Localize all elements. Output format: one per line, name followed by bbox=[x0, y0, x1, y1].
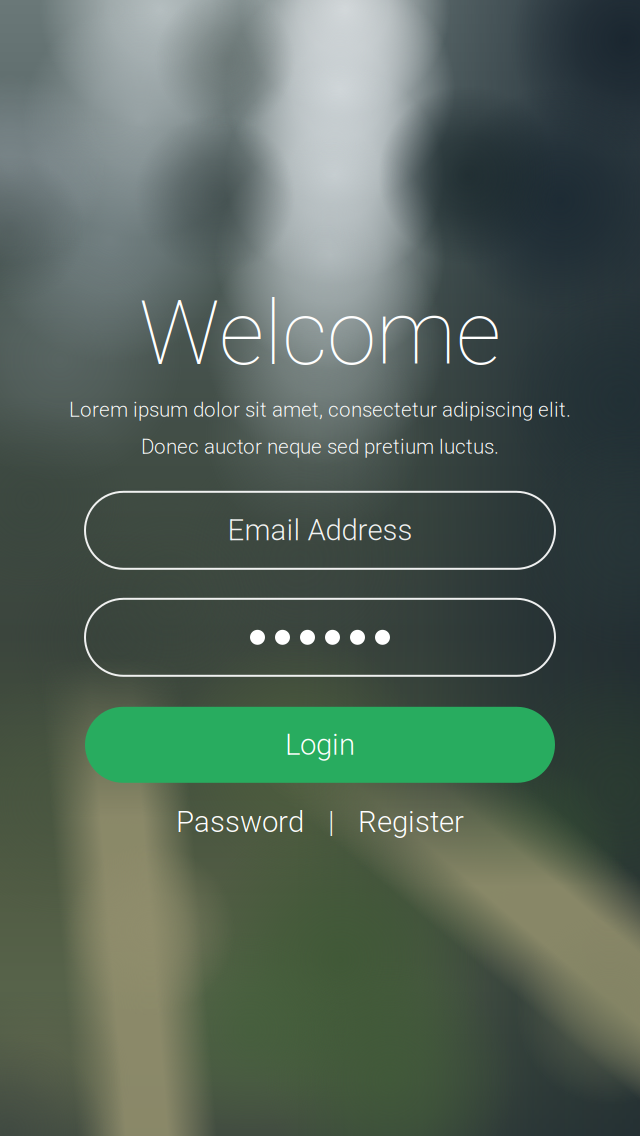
button[interactable]: Register bbox=[350, 797, 472, 847]
staticText: Login bbox=[285, 728, 355, 762]
button[interactable]: Login bbox=[85, 707, 555, 783]
staticText: Register bbox=[358, 805, 464, 839]
button[interactable] bbox=[85, 599, 555, 676]
staticText: Password bbox=[176, 805, 304, 839]
button[interactable]: Email Address bbox=[85, 492, 555, 569]
button[interactable]: Password bbox=[168, 797, 312, 847]
staticText: Lorem ipsum dolor sit amet, consectetur … bbox=[69, 398, 571, 422]
staticText: Welcome bbox=[139, 281, 501, 386]
staticText: Email Address bbox=[227, 513, 412, 547]
staticText: | bbox=[328, 805, 334, 839]
staticText: Donec auctor neque sed pretium luctus. bbox=[141, 435, 499, 459]
